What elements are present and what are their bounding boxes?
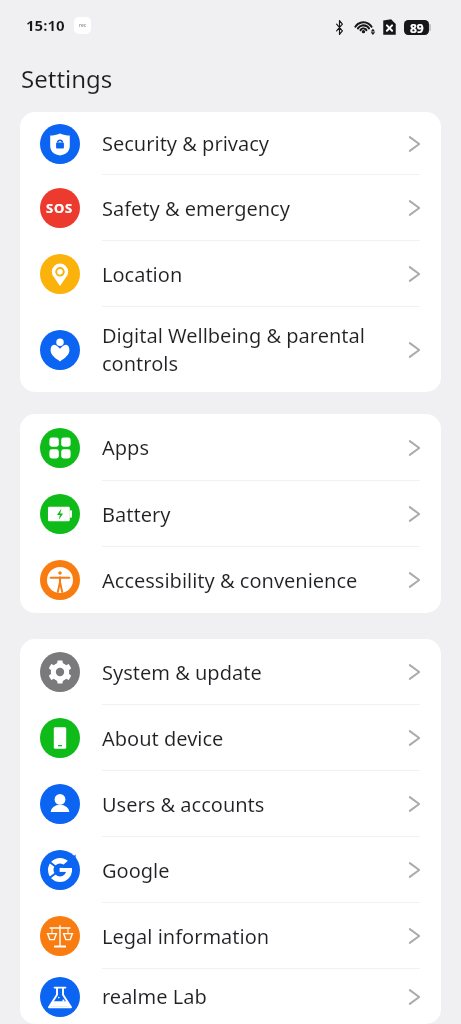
staticText: 89 (410, 20, 424, 35)
staticText: realme Lab (102, 983, 408, 1010)
button[interactable]: Apps (20, 414, 441, 481)
button[interactable]: Accessibility & convenience (20, 547, 441, 613)
staticText: Location (102, 261, 408, 288)
button[interactable]: Security & privacy (20, 112, 441, 175)
staticText: About device (102, 725, 408, 752)
button[interactable]: realme Lab (20, 969, 441, 1024)
staticText: rec (79, 22, 87, 29)
button[interactable]: About device (20, 705, 441, 771)
staticText: Accessibility & convenience (102, 567, 408, 594)
button[interactable]: SOS (20, 175, 441, 241)
button[interactable]: Battery (20, 481, 441, 547)
button[interactable]: Legal information (20, 903, 441, 969)
staticText: Google (102, 857, 408, 884)
button[interactable]: Location (20, 241, 441, 307)
staticText: 15:10 (26, 15, 65, 35)
button[interactable]: Digital Wellbeing & parental controls (20, 307, 441, 392)
button[interactable]: Google (20, 837, 441, 903)
button[interactable]: Users & accounts (20, 771, 441, 837)
staticText: System & update (102, 659, 408, 686)
staticText: Battery (102, 501, 408, 528)
staticText: Safety & emergency (102, 195, 408, 222)
staticText: Users & accounts (102, 791, 408, 818)
staticText: Settings (21, 62, 113, 95)
button[interactable]: System & update (20, 639, 441, 705)
staticText: Security & privacy (102, 130, 408, 157)
staticText: SOS (46, 199, 74, 217)
staticText: Apps (102, 434, 408, 461)
staticText: Legal information (102, 923, 408, 950)
staticText: Digital Wellbeing & parental controls (102, 322, 408, 377)
